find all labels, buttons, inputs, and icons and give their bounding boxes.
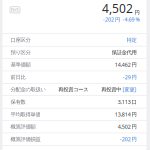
button[interactable]: 口座区分 bbox=[0, 34, 150, 46]
staticText: 基準価額 bbox=[10, 61, 30, 68]
staticText: 再投資中 bbox=[101, 86, 121, 93]
staticText: 口 bbox=[131, 99, 136, 105]
staticText: 円 bbox=[131, 111, 136, 118]
staticText: 円 bbox=[134, 9, 139, 16]
staticText: 保有数 bbox=[10, 99, 25, 105]
staticText: 円 bbox=[131, 136, 136, 142]
button[interactable]: 平均取得単価 bbox=[0, 108, 150, 121]
staticText: -29 bbox=[123, 74, 131, 81]
staticText: 概算評価額 bbox=[10, 123, 35, 130]
staticText: 再投資コース bbox=[58, 86, 88, 93]
staticText: 特定 bbox=[126, 37, 136, 43]
button[interactable]: 概算評価損益 bbox=[0, 133, 150, 146]
staticText: -202 円 bbox=[103, 16, 120, 23]
staticText: 平均取得単価 bbox=[10, 111, 40, 118]
staticText: 円 bbox=[131, 61, 136, 68]
staticText: 保証金代用 bbox=[111, 49, 136, 56]
button[interactable]: 分配金の取扱い bbox=[0, 84, 150, 96]
staticText: -4.69 % bbox=[122, 16, 139, 23]
button[interactable]: 投信 bbox=[10, 7, 20, 13]
staticText: 13,814 bbox=[115, 111, 131, 118]
staticText: 3,113 bbox=[118, 98, 131, 105]
staticText: 口座区分 bbox=[10, 37, 30, 43]
staticText: 円 bbox=[131, 74, 136, 80]
button[interactable]: 保有数 bbox=[0, 96, 150, 108]
staticText: 分配金の取扱い bbox=[10, 86, 45, 93]
button[interactable]: 基準価額 bbox=[0, 59, 150, 71]
staticText: 円 bbox=[131, 123, 136, 130]
staticText: 概算評価損益 bbox=[10, 136, 40, 142]
button[interactable]: 前日比 bbox=[0, 71, 150, 84]
button[interactable]: 預り区分 bbox=[0, 46, 150, 59]
staticText: 14,462 bbox=[115, 61, 131, 68]
staticText: 預り区分 bbox=[10, 49, 30, 56]
staticText: 4,502 bbox=[102, 0, 133, 16]
staticText: 前日比 bbox=[10, 74, 25, 80]
button[interactable]: 概算評価額 bbox=[0, 121, 150, 133]
staticText: 投信 bbox=[11, 7, 19, 12]
staticText: [変更] bbox=[122, 86, 136, 93]
staticText: 4,502 bbox=[118, 123, 131, 130]
staticText: -202 bbox=[120, 136, 131, 143]
